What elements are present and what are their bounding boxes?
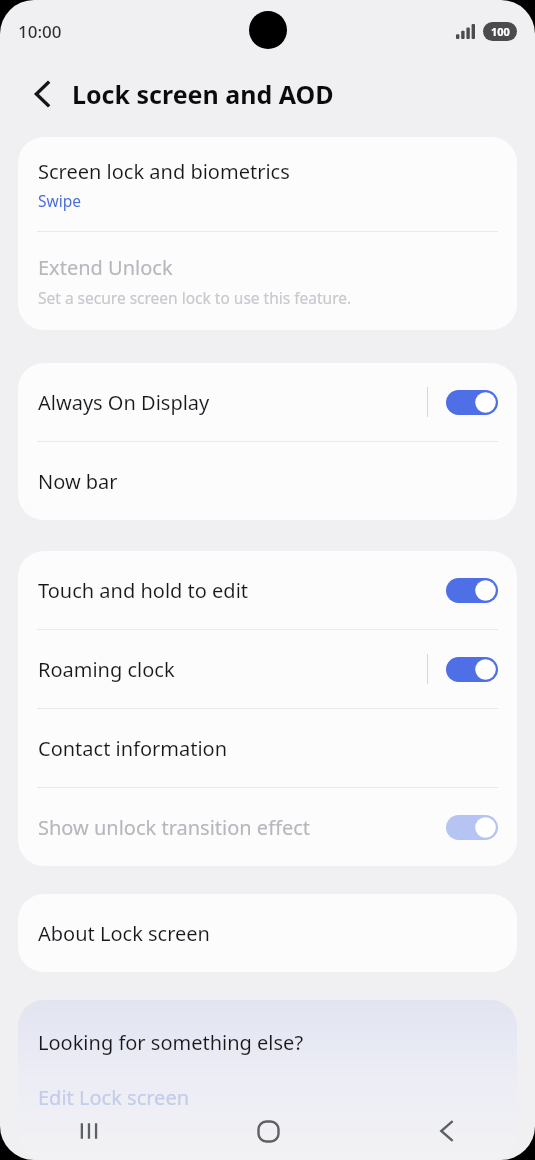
staticText: 10:00 <box>18 20 62 43</box>
staticText: Always On Display <box>38 389 427 416</box>
button[interactable]: Extend Unlock <box>18 232 517 330</box>
button[interactable]: Toggle <box>446 657 498 682</box>
staticText: Contact information <box>38 735 228 762</box>
button[interactable]: Screen lock and biometrics <box>18 137 517 231</box>
staticText: Looking for something else? <box>38 1029 304 1056</box>
staticText: Now bar <box>38 468 118 495</box>
button[interactable]: Now bar <box>18 442 517 520</box>
button[interactable]: Always On Display <box>18 363 517 441</box>
staticText: Roaming clock <box>38 656 427 683</box>
button[interactable]: Toggle <box>446 390 498 415</box>
button[interactable]: Show unlock transition effect <box>18 788 517 866</box>
staticText: Set a secure screen lock to use this fea… <box>38 287 352 308</box>
button[interactable]: About Lock screen <box>18 894 517 972</box>
button[interactable]: Recents <box>0 1102 179 1160</box>
staticText: Show unlock transition effect <box>38 814 446 841</box>
button[interactable]: Roaming clock <box>18 630 517 708</box>
staticText: Lock screen and AOD <box>72 77 334 111</box>
button[interactable]: Edit Lock screen <box>18 1080 517 1129</box>
staticText: Screen lock and biometrics <box>38 158 290 185</box>
button[interactable]: Contact information <box>18 709 517 787</box>
staticText: Touch and hold to edit <box>38 577 446 604</box>
staticText: 100 <box>491 24 510 39</box>
button[interactable]: Touch and hold to edit <box>18 551 517 629</box>
button[interactable]: Back <box>357 1102 535 1160</box>
button[interactable]: Home <box>179 1102 357 1160</box>
button[interactable]: Toggle <box>446 815 498 840</box>
staticText: About Lock screen <box>38 920 210 947</box>
staticText: Edit Lock screen <box>38 1084 190 1111</box>
button[interactable]: Looking for something else? <box>18 1000 517 1080</box>
button[interactable]: Back <box>18 70 66 118</box>
staticText: Swipe <box>38 190 81 211</box>
button[interactable]: Toggle <box>446 578 498 603</box>
staticText: Extend Unlock <box>38 254 173 281</box>
